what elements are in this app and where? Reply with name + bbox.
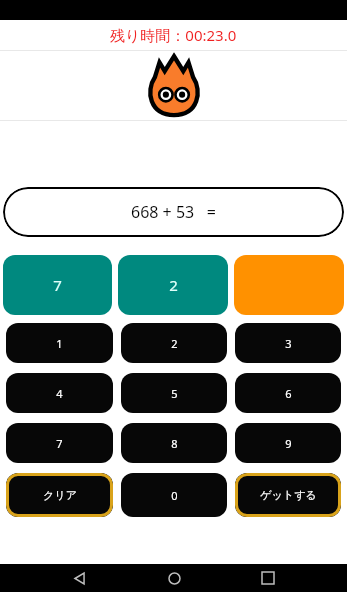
button[interactable]: 5 <box>121 373 227 413</box>
button[interactable]: クリア <box>6 473 113 517</box>
staticText: 5 <box>171 386 178 401</box>
button[interactable]: 4 <box>6 373 113 413</box>
staticText: 2 <box>171 336 178 351</box>
button[interactable]: 7 <box>3 255 112 315</box>
button[interactable]: ゲットする <box>235 473 341 517</box>
staticText: 1 <box>56 336 63 351</box>
staticText: 4 <box>56 386 63 401</box>
staticText: ゲットする <box>260 488 317 502</box>
button[interactable]: 2 <box>118 255 228 315</box>
button[interactable]: Recents <box>253 564 283 592</box>
staticText: 6 <box>285 386 292 401</box>
button[interactable] <box>234 255 344 315</box>
button[interactable]: 2 <box>121 323 227 363</box>
button[interactable]: 9 <box>235 423 341 463</box>
button[interactable]: 0 <box>121 473 227 517</box>
button[interactable]: 3 <box>235 323 341 363</box>
button[interactable]: 6 <box>235 373 341 413</box>
staticText: 7 <box>56 436 63 451</box>
staticText: 3 <box>285 336 292 351</box>
staticText: 2 <box>169 275 178 295</box>
button[interactable]: Back <box>64 564 94 592</box>
staticText: 9 <box>285 436 292 451</box>
button[interactable]: Home <box>159 564 189 592</box>
button[interactable]: 1 <box>6 323 113 363</box>
staticText: 7 <box>53 275 62 295</box>
button[interactable]: 7 <box>6 423 113 463</box>
staticText: 8 <box>171 436 178 451</box>
staticText: 668 + 53 = <box>131 201 216 223</box>
staticText: クリア <box>43 488 77 502</box>
staticText: 0 <box>171 488 178 503</box>
staticText: 残り時間：00:23.0 <box>110 25 237 45</box>
button[interactable]: 8 <box>121 423 227 463</box>
